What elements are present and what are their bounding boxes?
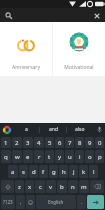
- button[interactable]: s: [19, 165, 28, 178]
- staticText: a: [25, 126, 28, 133]
- staticText: 6: [58, 139, 62, 147]
- button[interactable]: Search: [3, 10, 14, 21]
- button[interactable]: c: [35, 180, 45, 193]
- staticText: 7: [68, 139, 72, 147]
- staticText: p: [98, 153, 102, 161]
- button[interactable]: also: [67, 123, 93, 136]
- button[interactable]: f: [39, 165, 48, 178]
- staticText: 3: [26, 139, 30, 147]
- button[interactable]: p: [95, 150, 104, 163]
- button[interactable]: i: [75, 150, 84, 163]
- staticText: w: [15, 153, 20, 161]
- button[interactable]: Shift: [1, 180, 14, 193]
- button[interactable]: 3: [23, 137, 33, 148]
- button[interactable]: and: [40, 123, 66, 136]
- button[interactable]: 4: [34, 137, 44, 148]
- staticText: x: [28, 183, 32, 191]
- button[interactable]: Enter: [87, 195, 104, 209]
- staticText: e: [26, 153, 30, 161]
- button[interactable]: r: [34, 150, 44, 163]
- staticText: 8: [78, 139, 82, 147]
- button[interactable]: ?123: [1, 195, 15, 209]
- button[interactable]: 6: [55, 137, 64, 148]
- staticText: j: [73, 168, 75, 176]
- staticText: a: [11, 168, 15, 176]
- staticText: m: [81, 183, 87, 191]
- staticText: b: [60, 183, 64, 191]
- staticText: .: [81, 198, 83, 206]
- button[interactable]: l: [89, 165, 98, 178]
- button[interactable]: g: [49, 165, 58, 178]
- button[interactable]: o: [85, 150, 94, 163]
- staticText: 4: [37, 139, 41, 147]
- button[interactable]: y: [55, 150, 64, 163]
- staticText: ,: [20, 198, 22, 206]
- staticText: c: [39, 183, 42, 191]
- staticText: t: [48, 153, 51, 161]
- button[interactable]: h: [59, 165, 68, 178]
- staticText: Motivational: [53, 64, 105, 71]
- button[interactable]: 0: [95, 137, 104, 148]
- staticText: z: [18, 183, 21, 191]
- staticText: r: [38, 153, 41, 161]
- button[interactable]: d: [29, 165, 38, 178]
- button[interactable]: Voice input: [93, 123, 105, 136]
- staticText: 5: [48, 139, 52, 147]
- staticText: v: [49, 183, 53, 191]
- button[interactable]: Emoji: [26, 195, 35, 209]
- button[interactable]: Motivational: [53, 22, 105, 76]
- button[interactable]: ,: [16, 195, 25, 209]
- button[interactable]: t: [45, 150, 54, 163]
- button[interactable]: Close: [91, 10, 102, 21]
- staticText: 0: [98, 139, 102, 147]
- button[interactable]: n: [68, 180, 78, 193]
- staticText: i: [79, 153, 81, 161]
- staticText: and: [49, 126, 58, 133]
- button[interactable]: m: [79, 180, 89, 193]
- button[interactable]: q: [1, 150, 11, 163]
- button[interactable]: e: [23, 150, 33, 163]
- button[interactable]: x: [25, 180, 34, 193]
- staticText: s: [22, 168, 25, 176]
- button[interactable]: 5: [45, 137, 54, 148]
- button[interactable]: a: [14, 123, 39, 136]
- staticText: 2: [15, 139, 19, 147]
- button[interactable]: u: [65, 150, 74, 163]
- button[interactable]: 2: [12, 137, 22, 148]
- staticText: 1: [4, 139, 8, 147]
- button[interactable]: 7: [65, 137, 74, 148]
- button[interactable]: Backspace: [90, 180, 104, 193]
- button[interactable]: v: [46, 180, 56, 193]
- staticText: also: [75, 126, 85, 133]
- staticText: u: [68, 153, 72, 161]
- button[interactable]: Anniversary: [0, 22, 52, 76]
- staticText: y: [58, 153, 62, 161]
- staticText: q: [4, 153, 8, 161]
- staticText: h: [62, 168, 66, 176]
- staticText: ?123: [3, 199, 13, 205]
- button[interactable]: j: [69, 165, 78, 178]
- staticText: f: [42, 168, 45, 176]
- staticText: English: [48, 199, 64, 205]
- button[interactable]: 9: [85, 137, 94, 148]
- button[interactable]: .: [77, 195, 86, 209]
- button[interactable]: Google: [0, 123, 14, 136]
- staticText: g: [52, 168, 56, 176]
- button[interactable]: a: [8, 165, 18, 178]
- button[interactable]: z: [15, 180, 24, 193]
- staticText: n: [71, 183, 75, 191]
- staticText: d: [32, 168, 36, 176]
- staticText: l: [93, 168, 95, 176]
- staticText: k: [82, 168, 86, 176]
- staticText: 9: [88, 139, 92, 147]
- button[interactable]: k: [79, 165, 88, 178]
- button[interactable]: English: [36, 195, 76, 209]
- button[interactable]: 1: [1, 137, 11, 148]
- button[interactable]: b: [57, 180, 67, 193]
- staticText: o: [88, 153, 92, 161]
- staticText: Anniversary: [0, 64, 52, 71]
- button[interactable]: w: [12, 150, 22, 163]
- button[interactable]: 8: [75, 137, 84, 148]
